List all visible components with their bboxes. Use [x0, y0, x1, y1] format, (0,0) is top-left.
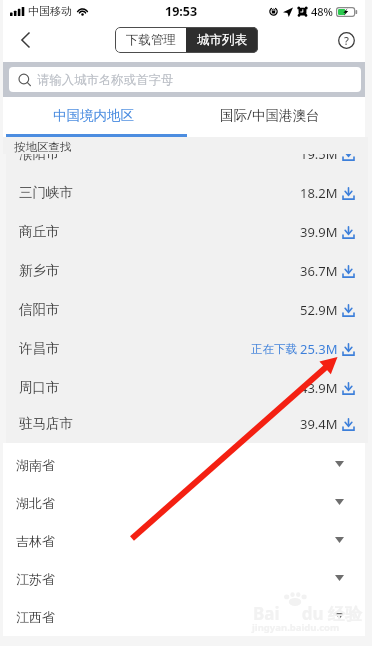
- button[interactable]: 三门峡市: [6, 173, 368, 212]
- staticText: 下载管理: [126, 32, 176, 48]
- button[interactable]: Help: [334, 28, 358, 52]
- staticText: 48%: [311, 4, 333, 19]
- staticText: 36.7M: [300, 262, 338, 280]
- staticText: 中国境内地区: [53, 107, 134, 124]
- button[interactable]: 城市列表: [186, 27, 258, 53]
- button[interactable]: 江苏省: [3, 560, 365, 598]
- staticText: 城市列表: [197, 32, 247, 48]
- button[interactable]: Download: [342, 148, 355, 161]
- staticText: 19:53: [165, 3, 198, 20]
- staticText: jingyan.baidu.com: [252, 621, 340, 634]
- button[interactable]: 新乡市: [6, 251, 368, 290]
- staticText: 国际/中国港澳台: [220, 106, 320, 124]
- staticText: 39.9M: [300, 223, 338, 241]
- staticText: 湖北省: [16, 495, 55, 511]
- button[interactable]: 请输入城市名称或首字母: [9, 67, 361, 92]
- button[interactable]: Download: [342, 343, 355, 356]
- button[interactable]: 湖北省: [3, 484, 365, 522]
- staticText: 三门峡市: [19, 184, 73, 201]
- button[interactable]: 国际/中国港澳台: [184, 97, 365, 137]
- staticText: 中国移动: [28, 4, 72, 18]
- button[interactable]: 下载管理: [115, 27, 186, 53]
- button[interactable]: Back: [10, 25, 40, 55]
- button[interactable]: Download: [342, 304, 355, 317]
- staticText: 正在下载: [251, 342, 297, 356]
- staticText: 驻马店市: [19, 415, 73, 432]
- staticText: 商丘市: [19, 223, 60, 240]
- staticText: 吉林省: [16, 533, 55, 549]
- staticText: 43.9M: [300, 379, 338, 397]
- button[interactable]: Download: [342, 226, 355, 239]
- button[interactable]: 中国境内地区: [3, 97, 184, 137]
- staticText: 39.4M: [300, 415, 338, 433]
- button[interactable]: 信阳市: [6, 290, 368, 329]
- staticText: 请输入城市名称或首字母: [37, 72, 174, 88]
- staticText: 江西省: [16, 609, 55, 625]
- staticText: 19.5M: [300, 145, 338, 163]
- button[interactable]: Download: [342, 382, 355, 395]
- staticText: 25.3M: [300, 340, 338, 358]
- button[interactable]: 濮阳市: [6, 134, 368, 173]
- button[interactable]: 吉林省: [3, 522, 365, 560]
- button[interactable]: 商丘市: [6, 212, 368, 251]
- staticText: 许昌市: [19, 340, 60, 357]
- staticText: 江苏省: [16, 571, 55, 587]
- staticText: 湖南省: [16, 457, 55, 473]
- button[interactable]: 湖南省: [3, 446, 365, 484]
- staticText: 新乡市: [19, 262, 60, 279]
- button[interactable]: 江西省: [3, 598, 365, 636]
- staticText: 周口市: [19, 379, 60, 396]
- staticText: ?: [344, 33, 349, 48]
- staticText: 52.9M: [300, 301, 338, 319]
- button[interactable]: 许昌市: [6, 329, 368, 368]
- staticText: 信阳市: [19, 301, 60, 318]
- staticText: 濮阳市: [19, 145, 60, 162]
- staticText: 按地区查找: [14, 140, 72, 154]
- button[interactable]: Download: [342, 265, 355, 278]
- button[interactable]: Download: [342, 187, 355, 200]
- button[interactable]: Download: [342, 418, 355, 431]
- staticText: Bai du 经验: [253, 602, 362, 625]
- button[interactable]: 驻马店市: [6, 407, 368, 440]
- staticText: 18.2M: [300, 184, 338, 202]
- button[interactable]: 周口市: [6, 368, 368, 407]
